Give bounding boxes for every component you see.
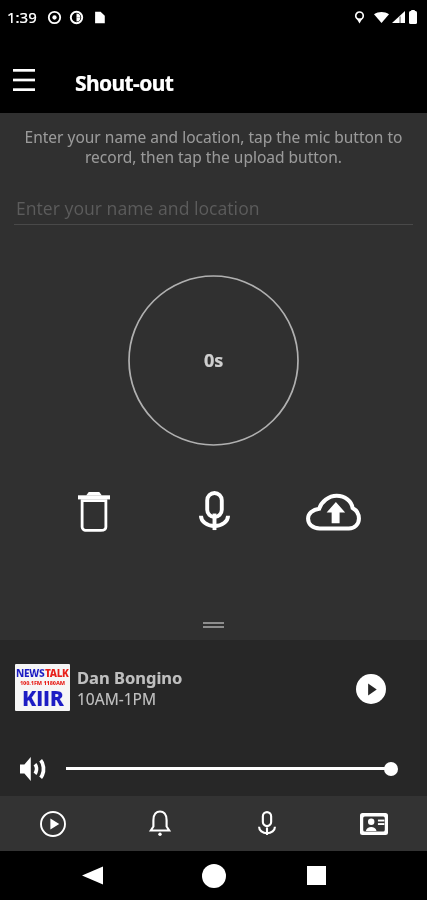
button[interactable]: Listen live xyxy=(0,796,106,851)
staticText: 0s xyxy=(204,348,224,373)
button[interactable]: Alerts xyxy=(106,796,213,851)
button[interactable]: Enter your name and location xyxy=(14,185,413,225)
button[interactable]: Delete recording xyxy=(39,483,149,539)
staticText: Enter your name and location xyxy=(16,196,260,220)
staticText: 100.1FM 1180AM xyxy=(20,679,65,686)
button[interactable]: Back xyxy=(70,853,115,898)
button[interactable]: Recent apps xyxy=(294,853,339,898)
staticText: Dan Bongino xyxy=(77,666,183,688)
staticText: Enter your name and location, tap the mi… xyxy=(10,126,417,168)
button[interactable]: Play xyxy=(356,674,386,704)
staticText: 1:39 xyxy=(7,7,37,27)
button[interactable]: NEWS xyxy=(0,640,427,741)
button[interactable]: Record shout-out xyxy=(213,796,320,851)
staticText: KJJR xyxy=(22,684,64,706)
staticText: 10AM-1PM xyxy=(77,688,156,709)
staticText: NEWS xyxy=(16,666,45,680)
button[interactable]: Open navigation menu xyxy=(0,57,48,113)
staticText: Shout-out xyxy=(75,69,174,98)
button[interactable]: Home xyxy=(191,853,236,898)
button[interactable]: Upload xyxy=(278,483,388,539)
button[interactable]: Contact xyxy=(320,796,427,851)
button[interactable]: Record xyxy=(159,483,269,539)
button[interactable]: Volume xyxy=(20,757,42,781)
staticText: TALK xyxy=(45,666,69,680)
